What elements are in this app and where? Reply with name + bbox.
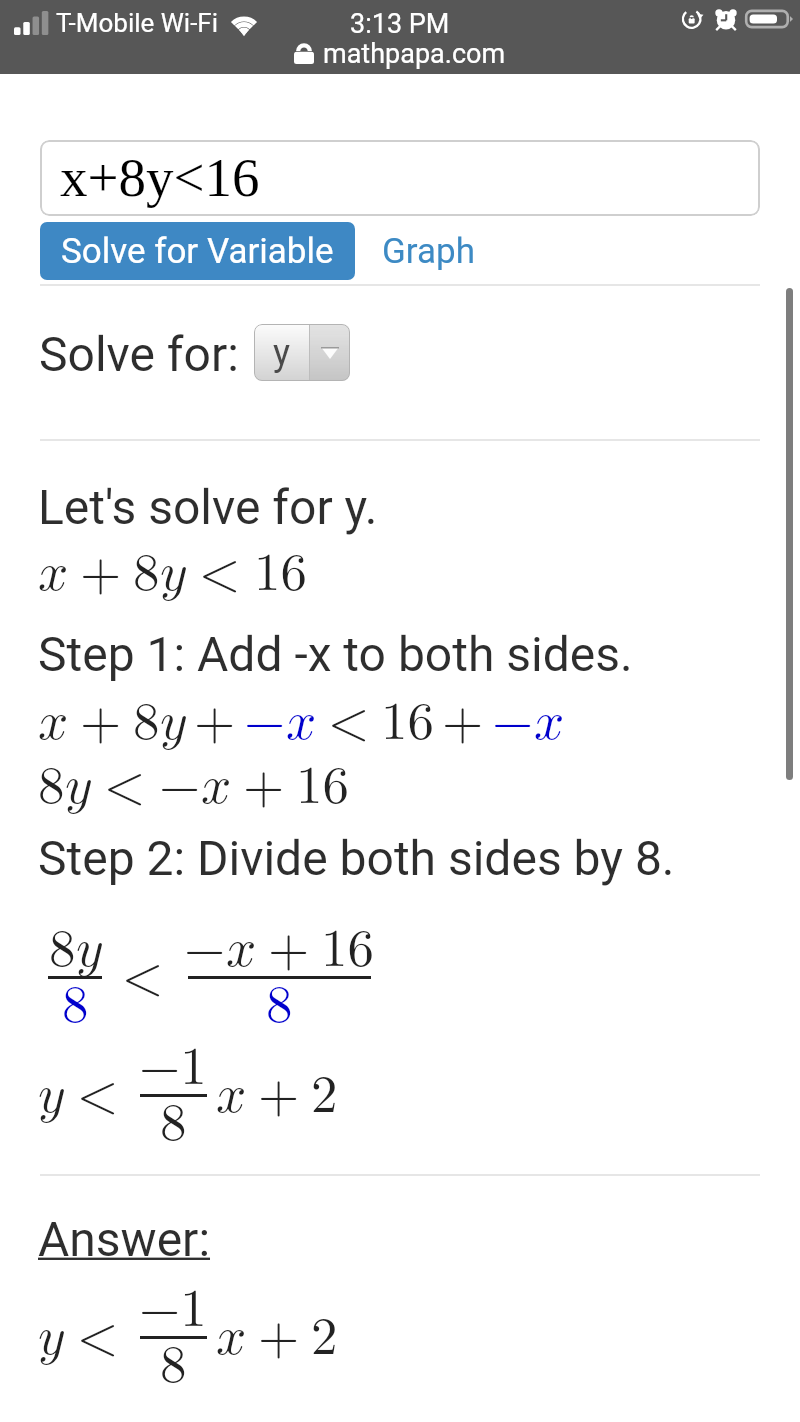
staticText: 𝑥 — [201, 760, 232, 813]
staticText: y — [273, 332, 291, 374]
staticText: −1 — [139, 1041, 207, 1094]
staticText: mathpapa.com — [323, 38, 506, 70]
staticText: −1 — [139, 1283, 207, 1336]
staticText: 𝑦 — [38, 1311, 64, 1364]
staticText: 8 — [133, 547, 160, 600]
staticText: 16 — [321, 923, 374, 976]
staticText: T-Mobile Wi-Fi — [56, 8, 219, 38]
staticText: 3:13 PM — [350, 8, 450, 40]
staticText: 8 — [133, 696, 160, 749]
staticText: 𝑥 — [38, 547, 69, 600]
staticText: − — [184, 923, 226, 976]
staticText: < — [77, 1311, 119, 1364]
other: Alarm — [715, 8, 737, 30]
staticText: Step 2: Divide both sides by 8. — [38, 830, 675, 886]
staticText: Solve for: — [39, 326, 239, 382]
staticText: Graph — [382, 231, 475, 272]
staticText: 8 — [38, 760, 65, 813]
staticText: 𝑦 — [76, 923, 102, 976]
button[interactable]: x+8y<16 — [40, 140, 760, 216]
staticText: < — [104, 760, 146, 813]
staticText: 8 — [266, 979, 293, 1032]
staticText: + — [442, 696, 484, 749]
staticText: + — [258, 1069, 300, 1122]
staticText: 2 — [311, 1069, 338, 1122]
staticText: 8 — [62, 979, 89, 1032]
staticText: 16 — [381, 696, 434, 749]
other: Rotation lock — [682, 8, 704, 30]
staticText: 𝑥 — [216, 1311, 247, 1364]
staticText: + — [258, 1311, 300, 1364]
staticText: 2 — [311, 1311, 338, 1364]
staticText: Step 1: Add -x to both sides. — [38, 626, 633, 682]
staticText: − — [159, 760, 201, 813]
staticText: Let's solve for y. — [38, 479, 378, 535]
staticText: + — [268, 923, 310, 976]
staticText: 16 — [296, 760, 349, 813]
staticText: + — [243, 760, 285, 813]
staticText: < — [122, 951, 164, 1004]
staticText: − — [244, 696, 286, 749]
button[interactable]: Graph — [370, 222, 487, 280]
staticText: 𝑥 — [534, 696, 565, 749]
staticText: 8 — [160, 1097, 187, 1150]
staticText: < — [77, 1069, 119, 1122]
staticText: 𝑥 — [286, 696, 317, 749]
staticText: < — [328, 696, 370, 749]
staticText: Answer: — [38, 1211, 211, 1267]
button[interactable]: y — [254, 324, 350, 381]
button[interactable]: Solve for Variable — [40, 222, 355, 280]
staticText: 𝑥 — [216, 1069, 247, 1122]
staticText: 𝑦 — [160, 547, 186, 600]
staticText: x+8y<16 — [60, 147, 260, 208]
staticText: 8 — [160, 1339, 187, 1392]
staticText: 8 — [49, 923, 76, 976]
other: Battery — [745, 8, 793, 30]
staticText: + — [80, 547, 122, 600]
staticText: + — [80, 696, 122, 749]
staticText: 𝑦 — [160, 696, 186, 749]
staticText: 𝑦 — [38, 1069, 64, 1122]
staticText: < — [199, 547, 241, 600]
staticText: + — [194, 696, 236, 749]
staticText: − — [492, 696, 534, 749]
staticText: 𝑦 — [65, 760, 91, 813]
staticText: Solve for Variable — [61, 231, 334, 272]
staticText: 𝑥 — [38, 696, 69, 749]
staticText: 16 — [254, 547, 307, 600]
staticText: 𝑥 — [226, 923, 257, 976]
